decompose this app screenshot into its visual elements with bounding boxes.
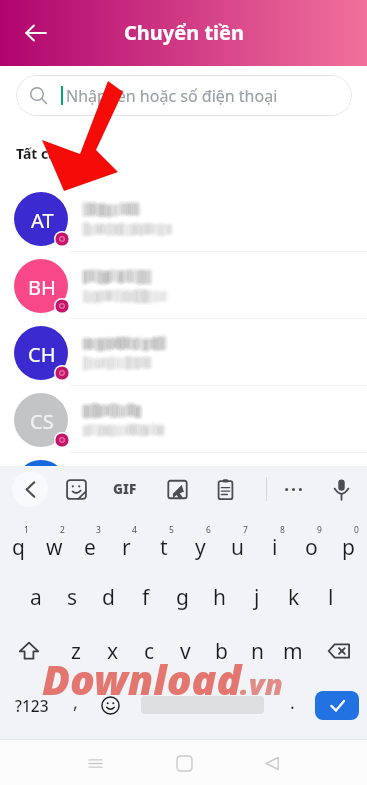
button[interactable]: a (18, 570, 54, 624)
button[interactable]: o (293, 517, 330, 570)
staticText: r (122, 533, 131, 562)
staticText: x (107, 637, 119, 666)
button[interactable]: s (54, 570, 90, 624)
button[interactable]: . (274, 678, 310, 732)
staticText: b (215, 637, 228, 666)
staticText: u (231, 533, 244, 562)
button[interactable]: w (36, 517, 72, 570)
button[interactable]: d (90, 570, 127, 624)
button[interactable]: i (256, 517, 293, 570)
button[interactable]: v (167, 624, 203, 678)
button[interactable]: Nhập tên hoặc số điện thoại (16, 75, 352, 116)
staticText: , (73, 690, 78, 715)
button[interactable]: k (275, 570, 312, 624)
staticText: s (67, 583, 78, 612)
staticText: l (328, 583, 334, 612)
staticText: Chuyển tiền (124, 19, 244, 46)
button[interactable]: , (57, 678, 93, 732)
button[interactable]: Clipboard (209, 473, 241, 505)
staticText: t (160, 533, 168, 562)
staticText: Nhập tên hoặc số điện thoại (66, 85, 278, 107)
staticText: GIF (113, 480, 137, 498)
staticText: f (142, 583, 150, 612)
staticText: 3 (96, 524, 101, 536)
button[interactable]: BH (0, 252, 367, 319)
staticText: 6 (206, 524, 211, 536)
staticText: 8 (280, 524, 285, 536)
button[interactable]: b (203, 624, 239, 678)
staticText: . (290, 690, 295, 715)
staticText: d (102, 583, 115, 612)
button[interactable]: CH (0, 319, 367, 386)
staticText: 7 (243, 524, 248, 536)
staticText: m (283, 637, 303, 666)
staticText: g (176, 583, 189, 612)
button[interactable]: u (219, 517, 256, 570)
staticText: Download (42, 651, 242, 707)
staticText: AT (31, 207, 54, 234)
button[interactable]: m (275, 624, 311, 678)
staticText: z (71, 637, 81, 666)
staticText: o (305, 533, 318, 562)
button[interactable]: f (127, 570, 164, 624)
button[interactable]: j (238, 570, 275, 624)
button[interactable]: ?123 (4, 678, 60, 732)
button[interactable]: r (108, 517, 145, 570)
button[interactable]: Shift (0, 624, 57, 678)
button[interactable]: More options (277, 473, 309, 505)
staticText: CH (28, 341, 56, 368)
button[interactable]: Enter (315, 691, 359, 720)
button[interactable]: GIF (109, 473, 141, 505)
button[interactable]: AT (0, 185, 367, 252)
button[interactable]: Recent apps (74, 742, 116, 784)
staticText: p (342, 533, 355, 562)
staticText: y (195, 533, 206, 562)
button[interactable]: z (57, 624, 94, 678)
button[interactable]: Emoji (92, 678, 128, 732)
staticText: a (30, 583, 42, 612)
staticText: e (84, 533, 96, 562)
button[interactable]: Back (14, 11, 58, 55)
staticText: q (12, 533, 25, 562)
staticText: k (288, 583, 300, 612)
button[interactable]: n (239, 624, 275, 678)
button[interactable]: e (72, 517, 108, 570)
button[interactable] (0, 453, 367, 465)
staticText: BH (28, 274, 56, 301)
button[interactable]: Voice input (325, 473, 357, 505)
button[interactable]: Stickers (60, 473, 92, 505)
button[interactable]: Backspace (311, 624, 367, 678)
button[interactable]: l (312, 570, 349, 624)
button[interactable]: h (201, 570, 238, 624)
staticText: h (213, 583, 226, 612)
staticText: n (251, 637, 264, 666)
staticText: ?123 (15, 695, 49, 716)
staticText: 1 (24, 524, 29, 536)
button[interactable]: Back (251, 742, 293, 784)
staticText: .vn (240, 664, 283, 703)
staticText: 5 (169, 524, 174, 536)
staticText: v (180, 637, 191, 666)
button[interactable]: y (182, 517, 219, 570)
button[interactable]: Select text (161, 473, 193, 505)
button[interactable]: q (0, 517, 36, 570)
staticText: 2 (60, 524, 65, 536)
staticText: 0 (354, 524, 359, 536)
staticText: w (46, 533, 63, 562)
button[interactable]: Back (12, 471, 48, 507)
button[interactable]: p (330, 517, 367, 570)
staticText: Tất cả (16, 144, 57, 163)
button[interactable]: Home (163, 742, 205, 784)
button[interactable]: x (94, 624, 131, 678)
button[interactable]: CS (0, 386, 367, 453)
staticText: 9 (317, 524, 322, 536)
button[interactable]: g (164, 570, 201, 624)
button[interactable]: t (145, 517, 182, 570)
staticText: i (272, 533, 278, 562)
staticText: 4 (132, 524, 137, 536)
staticText: j (254, 583, 260, 612)
button[interactable]: c (131, 624, 167, 678)
staticText: c (144, 637, 155, 666)
staticText: CS (30, 408, 54, 435)
